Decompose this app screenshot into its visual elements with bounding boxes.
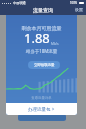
button[interactable] bbox=[18, 114, 66, 121]
button[interactable]: 立即领取流量 bbox=[28, 61, 60, 69]
button[interactable]: 办理流量包 > bbox=[6, 103, 77, 115]
staticText: 相当于18M流量 bbox=[6, 48, 77, 54]
staticText: Mb/s bbox=[51, 42, 59, 46]
staticText: 立即领取流量 bbox=[34, 63, 55, 67]
staticText: 办理流量包 > bbox=[28, 106, 55, 112]
staticText: 流量查询 bbox=[33, 7, 53, 13]
staticText: 1.88 bbox=[24, 29, 50, 47]
staticText: 100% bbox=[70, 1, 78, 5]
staticText: 中国联通 bbox=[13, 1, 26, 5]
staticText: 查看流量详单 bbox=[6, 96, 77, 100]
button[interactable]: 设置 bbox=[75, 7, 83, 12]
staticText: 剩余本月可用流量 bbox=[6, 25, 77, 31]
